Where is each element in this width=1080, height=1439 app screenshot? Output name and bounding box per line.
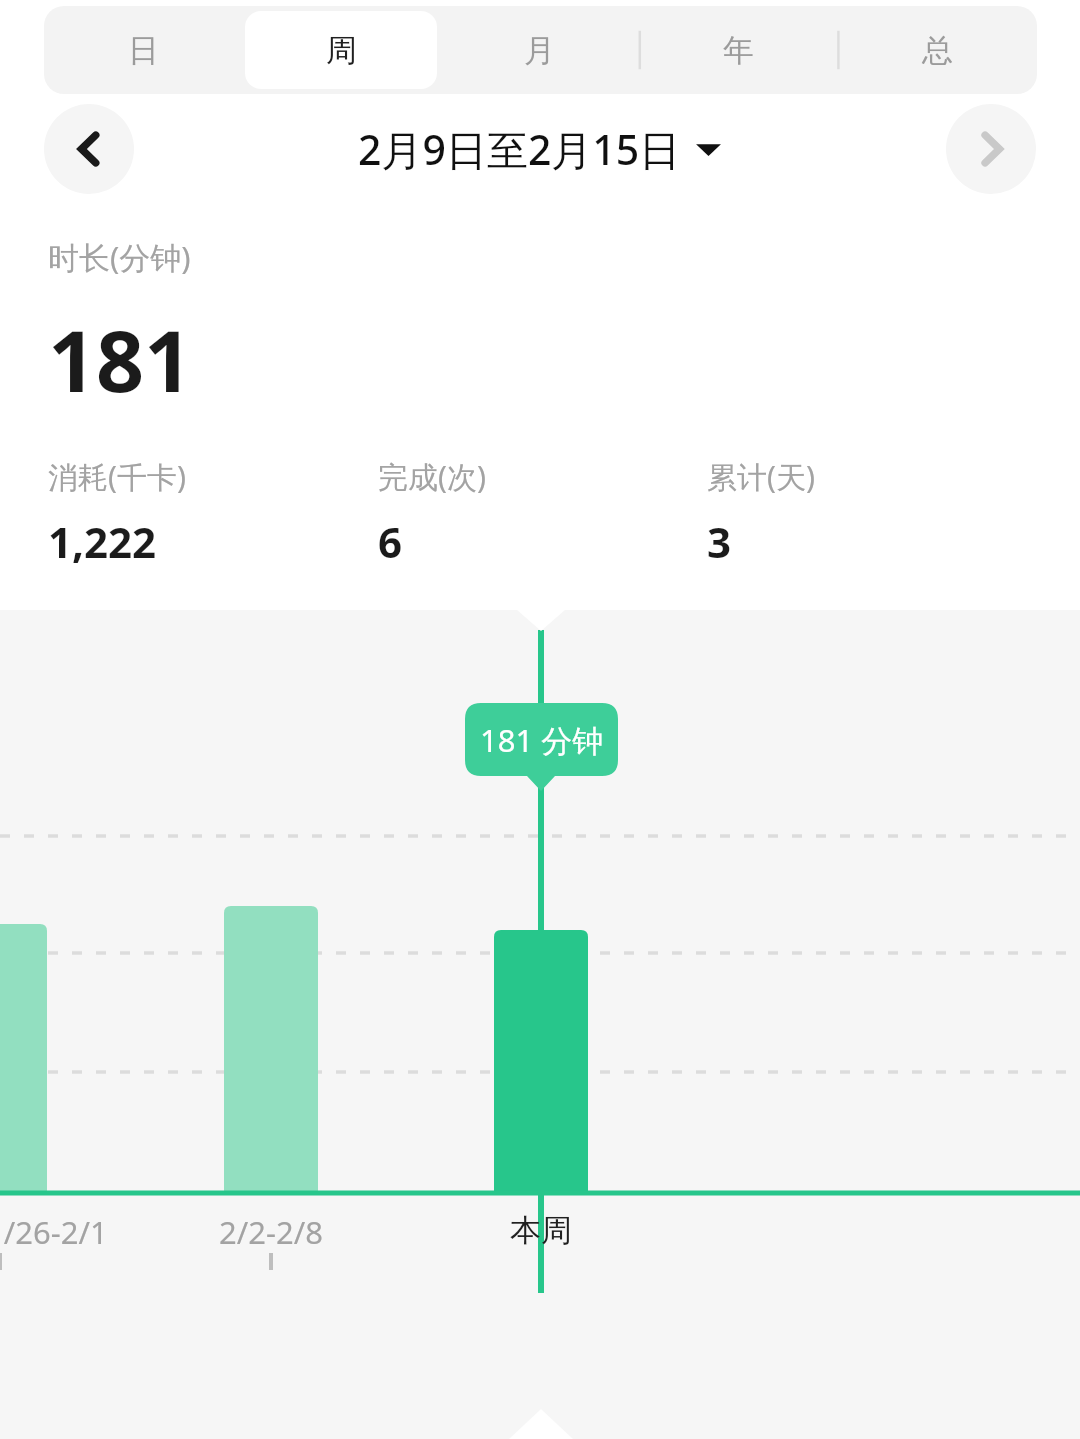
button[interactable]: 总 bbox=[838, 11, 1037, 89]
staticText: 2月9日至2月15日 bbox=[358, 121, 681, 177]
staticText: 2/2-2/8 bbox=[219, 1211, 323, 1253]
button[interactable]: 181 分钟 bbox=[465, 703, 618, 776]
staticText: 总 bbox=[922, 31, 953, 70]
staticText: 1/26-2/1 bbox=[0, 1211, 108, 1253]
staticText: 时长(分钟) bbox=[48, 236, 191, 278]
button[interactable]: 2月9日至2月15日 bbox=[358, 121, 722, 177]
button[interactable]: 消耗(千卡) bbox=[48, 456, 378, 570]
button[interactable]: 月 bbox=[440, 11, 639, 89]
staticText: 累计(天) bbox=[707, 456, 815, 497]
button[interactable]: 年 bbox=[639, 11, 838, 89]
button[interactable]: 完成(次) bbox=[378, 456, 707, 570]
staticText: 消耗(千卡) bbox=[48, 456, 186, 497]
staticText: 年 bbox=[723, 31, 754, 70]
staticText: 6 bbox=[378, 513, 403, 570]
staticText: 月 bbox=[524, 31, 555, 70]
staticText: 日 bbox=[128, 31, 159, 70]
staticText: 1,222 bbox=[48, 513, 157, 570]
staticText: 完成(次) bbox=[378, 456, 486, 497]
staticText: 3 bbox=[707, 513, 732, 570]
button[interactable]: 日 bbox=[44, 11, 242, 89]
button[interactable]: 下一周 bbox=[946, 104, 1036, 194]
staticText: 181 bbox=[48, 302, 193, 416]
staticText: 181 分钟 bbox=[480, 719, 604, 761]
staticText: 周 bbox=[326, 31, 357, 70]
button[interactable]: 上一周 bbox=[44, 104, 134, 194]
button[interactable]: 周 bbox=[245, 11, 437, 89]
button[interactable]: 累计(天) bbox=[707, 456, 1036, 570]
staticText: 本周 bbox=[510, 1211, 572, 1250]
